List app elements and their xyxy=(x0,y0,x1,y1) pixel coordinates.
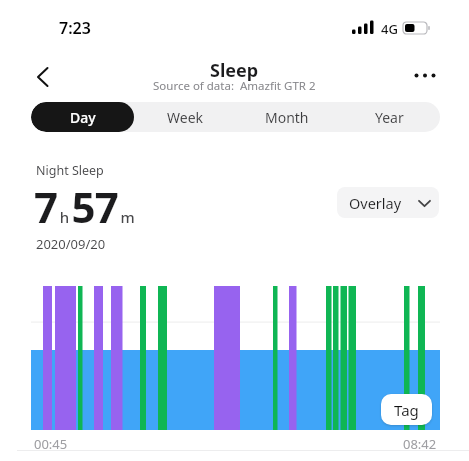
button[interactable]: Month xyxy=(236,102,338,132)
staticText: Source of data: Amazfit GTR 2 xyxy=(153,78,316,94)
staticText: 00:45 xyxy=(34,435,68,453)
button[interactable]: Year xyxy=(338,102,440,132)
staticText: 7 h 57 m xyxy=(34,178,135,235)
button[interactable]: Day xyxy=(31,102,134,132)
staticText: 2020/09/20 xyxy=(36,235,106,253)
staticText: Tag xyxy=(394,400,419,420)
staticText: Year xyxy=(375,108,404,127)
button[interactable]: Overlay xyxy=(337,187,439,218)
staticText: 4G xyxy=(381,20,398,38)
button[interactable] xyxy=(26,62,58,92)
button[interactable] xyxy=(405,62,445,90)
staticText: Month xyxy=(265,108,309,127)
staticText: Week xyxy=(167,108,204,127)
staticText: 7:23 xyxy=(59,17,91,39)
staticText: Sleep xyxy=(210,58,259,83)
staticText: Night Sleep xyxy=(36,162,104,179)
button[interactable]: Tag xyxy=(381,394,432,425)
staticText: Overlay xyxy=(349,193,402,213)
button[interactable]: Week xyxy=(134,102,236,132)
staticText: Day xyxy=(70,108,96,127)
staticText: 08:42 xyxy=(403,435,437,453)
